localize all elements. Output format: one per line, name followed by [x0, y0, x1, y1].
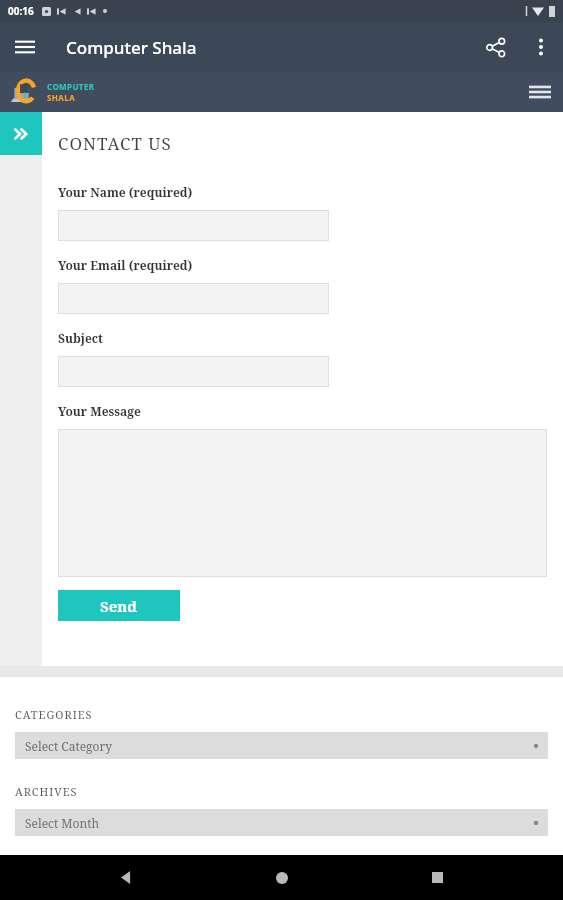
button[interactable]: Select Category	[15, 732, 548, 759]
button[interactable]: Send	[58, 590, 180, 621]
button[interactable]: Share	[471, 23, 519, 71]
staticText: Your Message	[58, 403, 141, 419]
staticText: CONTACT US	[58, 132, 172, 155]
staticText: Subject	[58, 330, 103, 346]
button[interactable]: Select Month	[15, 809, 548, 836]
staticText: Select Month	[25, 815, 100, 831]
button[interactable]: Expand sidebar	[0, 112, 42, 155]
staticText: 00:16	[8, 4, 34, 18]
staticText: Your Email (required)	[58, 257, 193, 273]
button[interactable]: Recent apps	[407, 855, 467, 900]
staticText: COMPUTER	[47, 81, 95, 92]
staticText: Computer Shala	[66, 36, 197, 59]
staticText: Your Name (required)	[58, 184, 193, 200]
button[interactable]: Text field	[58, 283, 329, 314]
staticText: SHALA	[47, 92, 76, 103]
button[interactable]: More options	[519, 25, 563, 69]
button[interactable]: Site menu	[517, 72, 563, 112]
staticText: CATEGORIES	[15, 707, 93, 722]
button[interactable]: Navigation menu	[0, 22, 50, 72]
staticText: ARCHIVES	[15, 784, 78, 799]
button[interactable]: Home	[252, 855, 312, 900]
button[interactable]: Text field	[58, 356, 329, 387]
staticText: Select Category	[25, 738, 112, 754]
button[interactable]: Text field	[58, 210, 329, 241]
button[interactable]: Back	[96, 855, 156, 900]
staticText: Send	[100, 596, 138, 616]
